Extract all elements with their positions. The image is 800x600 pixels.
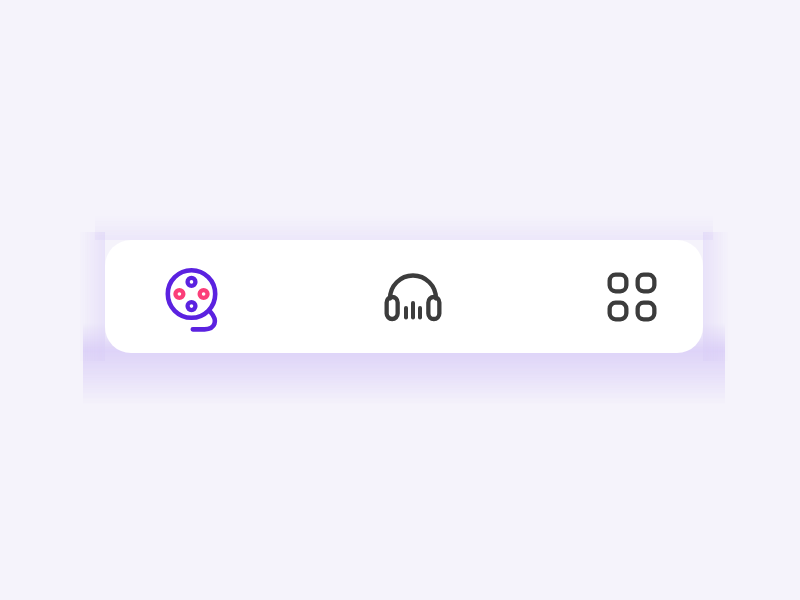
button[interactable]: Categories [592, 240, 672, 353]
button[interactable]: Movies [154, 240, 234, 353]
button[interactable]: Audio [373, 240, 453, 353]
